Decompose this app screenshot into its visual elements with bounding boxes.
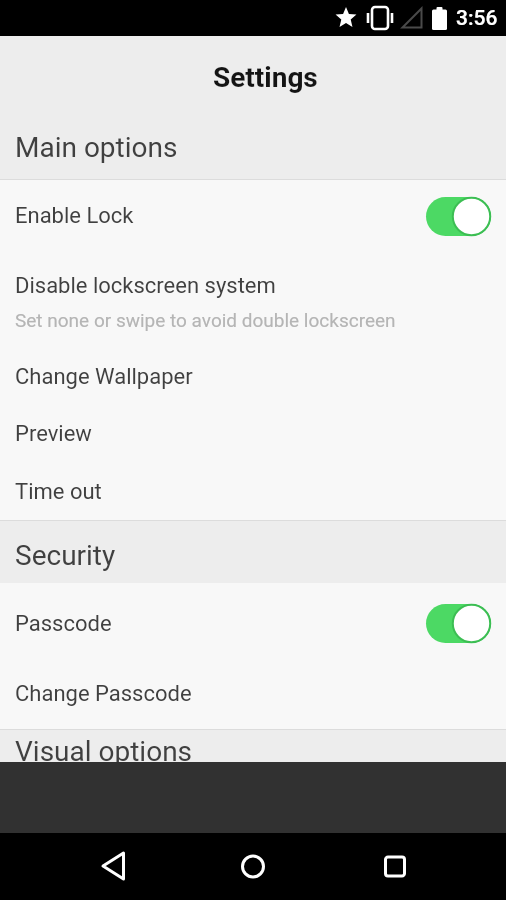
staticText: Security xyxy=(15,539,116,572)
button[interactable]: Change Passcode xyxy=(0,658,506,729)
staticText: Settings xyxy=(213,61,318,94)
button[interactable]: Passcode xyxy=(0,583,506,658)
staticText: Main options xyxy=(15,131,178,164)
button[interactable] xyxy=(93,853,133,893)
button[interactable]: Change Wallpaper xyxy=(0,348,506,405)
staticText: Passcode xyxy=(15,611,112,637)
button[interactable]: Enable Lock xyxy=(0,180,506,250)
staticText: Change Wallpaper xyxy=(15,364,193,390)
staticText: Time out xyxy=(15,479,102,505)
staticText: Preview xyxy=(15,421,92,447)
staticText: Enable Lock xyxy=(15,203,134,229)
button[interactable]: Disable lockscreen system xyxy=(0,250,506,348)
staticText: Set none or swipe to avoid double locksc… xyxy=(15,309,396,331)
staticText: Disable lockscreen system xyxy=(15,273,276,299)
button[interactable]: Preview xyxy=(0,405,506,463)
button[interactable]: Time out xyxy=(0,463,506,520)
button[interactable] xyxy=(375,853,415,893)
staticText: Visual options xyxy=(15,735,193,762)
staticText: Change Passcode xyxy=(15,681,192,707)
button[interactable] xyxy=(233,853,273,893)
staticText: 3:56 xyxy=(456,6,498,31)
